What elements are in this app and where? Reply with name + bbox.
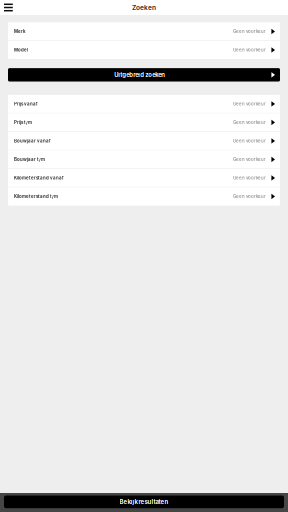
button[interactable]: Kilometerstand t/m (8, 187, 280, 205)
staticText: Uitgebreid zoeken (114, 71, 165, 78)
staticText: Geen voorkeur (233, 194, 266, 199)
staticText: Geen voorkeur (233, 101, 266, 107)
staticText: Geen voorkeur (233, 120, 266, 125)
button[interactable]: Uitgebreid zoeken (0, 68, 288, 82)
button[interactable]: Prijs t/m (8, 113, 280, 131)
staticText: Kilometerstand t/m (14, 194, 58, 199)
button[interactable]: Model (8, 41, 280, 59)
button[interactable]: Menu (0, 0, 18, 15)
staticText: Geen voorkeur (233, 138, 266, 144)
staticText: Geen voorkeur (233, 157, 266, 162)
staticText: Bouwjaar t/m (14, 157, 45, 162)
staticText: Bouwjaar vanaf (14, 138, 51, 144)
button[interactable]: Bekijk resultaten (0, 493, 288, 512)
staticText: Bekijk resultaten (119, 498, 168, 505)
staticText: Merk (14, 29, 26, 34)
staticText: Geen voorkeur (233, 47, 266, 53)
button[interactable]: Merk (8, 22, 280, 40)
button[interactable]: Prijs vanaf (8, 95, 280, 113)
button[interactable]: Bouwjaar t/m (8, 150, 280, 168)
staticText: Model (14, 47, 28, 53)
staticText: Geen voorkeur (233, 175, 266, 181)
staticText: Prijs t/m (14, 120, 32, 125)
staticText: Zoeken (132, 3, 156, 11)
button[interactable]: Kilometerstand vanaf (8, 169, 280, 187)
staticText: Kilometerstand vanaf (14, 175, 64, 181)
staticText: Geen voorkeur (233, 29, 266, 34)
button[interactable]: Bouwjaar vanaf (8, 132, 280, 150)
staticText: Prijs vanaf (14, 101, 38, 107)
